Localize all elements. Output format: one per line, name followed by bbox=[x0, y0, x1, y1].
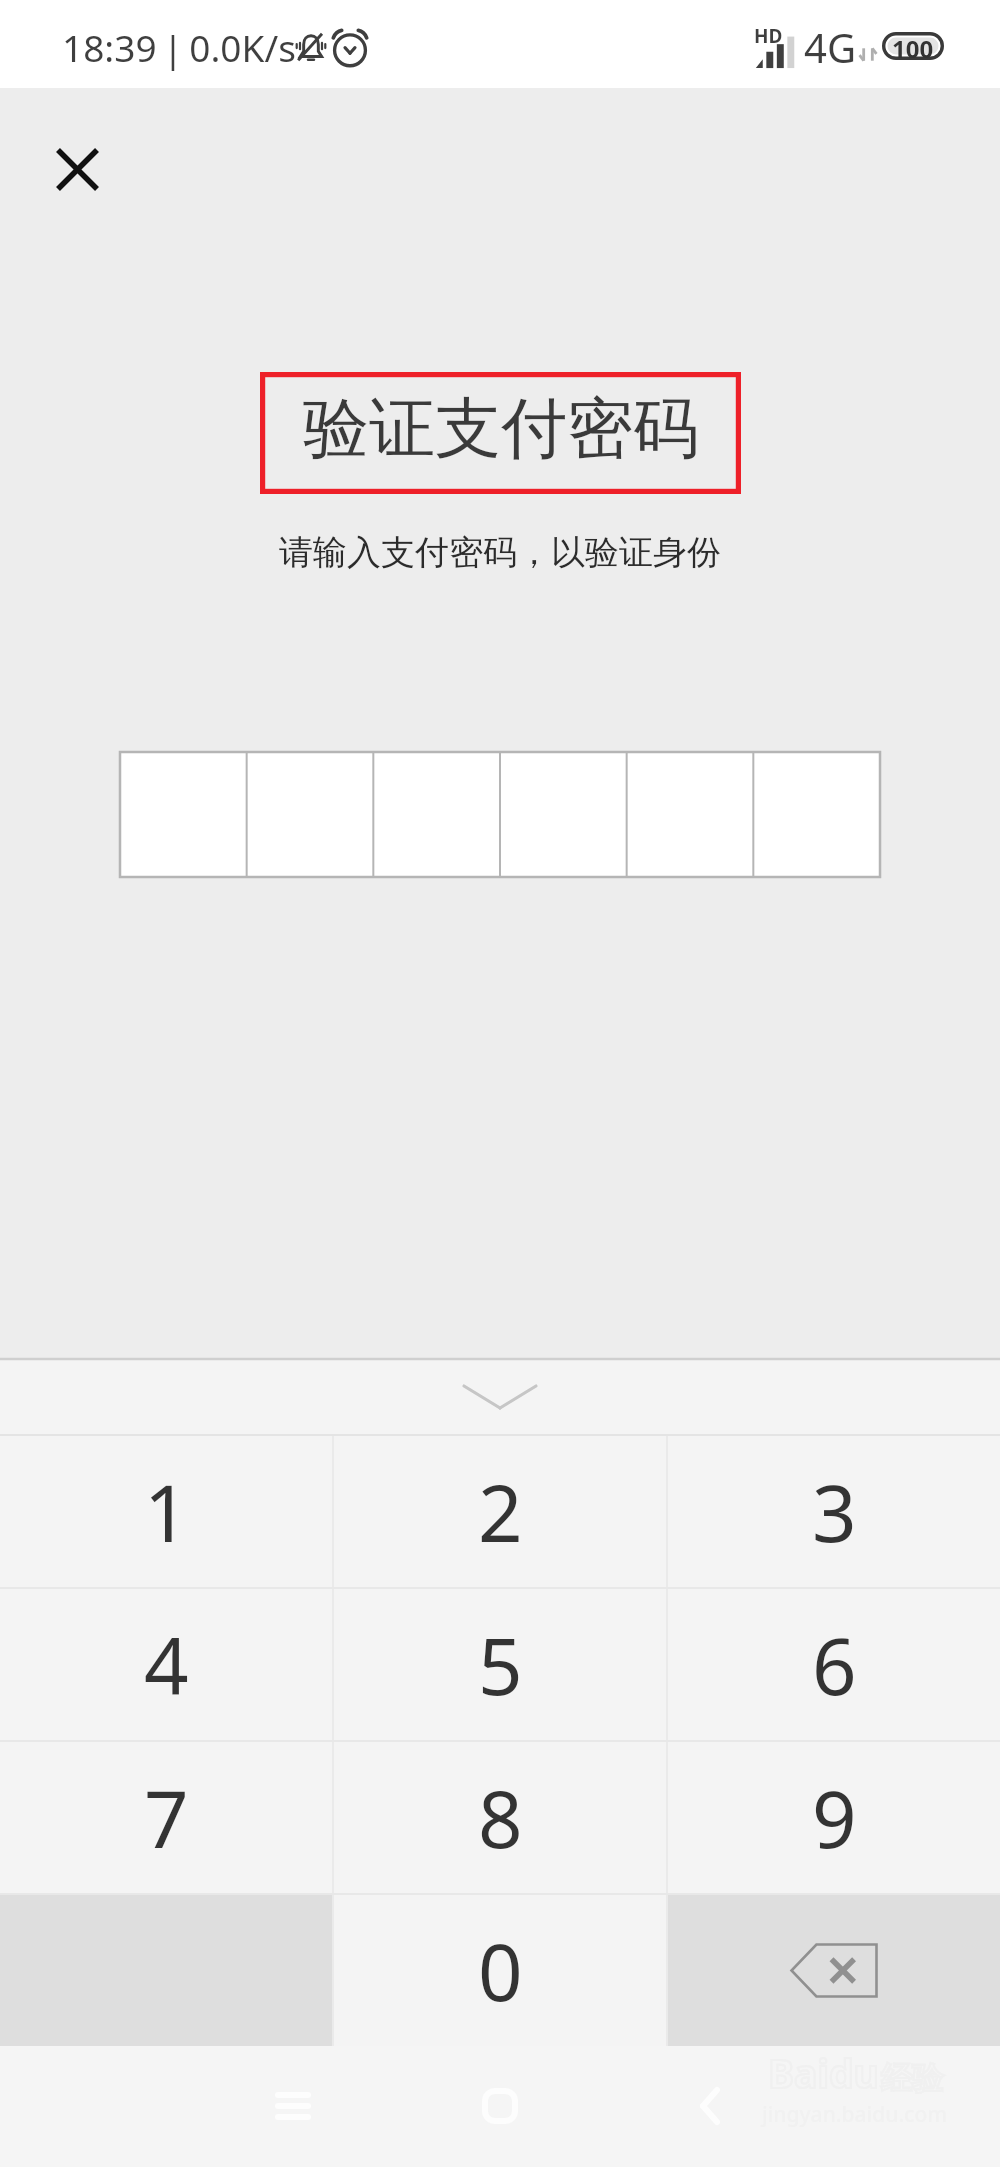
staticText: 9 bbox=[812, 1765, 857, 1871]
staticText: 6 bbox=[812, 1612, 857, 1718]
staticText: 2 bbox=[478, 1459, 523, 1565]
staticText: 100 bbox=[892, 32, 934, 60]
staticText: 0 bbox=[478, 1918, 523, 2024]
staticText: 1 bbox=[144, 1459, 189, 1565]
button[interactable]: 8 bbox=[334, 1742, 666, 1893]
staticText: HD bbox=[754, 23, 783, 49]
button[interactable]: Close bbox=[40, 132, 114, 206]
button[interactable]: 7 bbox=[0, 1742, 332, 1893]
button[interactable]: 4 bbox=[0, 1589, 332, 1740]
button[interactable]: 5 bbox=[334, 1589, 666, 1740]
button[interactable]: 0 bbox=[334, 1895, 666, 2046]
button[interactable]: 9 bbox=[668, 1742, 1000, 1893]
staticText: 5 bbox=[478, 1612, 523, 1718]
button[interactable]: 6 bbox=[668, 1589, 1000, 1740]
button[interactable]: Hide keyboard bbox=[0, 1358, 1000, 1436]
staticText: 4G bbox=[804, 20, 856, 74]
staticText: 4 bbox=[144, 1612, 189, 1718]
button[interactable]: 2 bbox=[334, 1436, 666, 1587]
button[interactable]: Delete bbox=[668, 1895, 1000, 2046]
button[interactable]: 3 bbox=[668, 1436, 1000, 1587]
staticText: 18:39 | 0.0K/s bbox=[62, 22, 296, 72]
staticText: 请输入支付密码，以验证身份 bbox=[279, 531, 721, 574]
staticText: 验证支付密码 bbox=[303, 387, 699, 470]
button[interactable]: 1 bbox=[0, 1436, 332, 1587]
staticText: 8 bbox=[478, 1765, 523, 1871]
staticText: 7 bbox=[144, 1765, 189, 1871]
button[interactable]: Password field bbox=[120, 752, 880, 877]
staticText: 3 bbox=[812, 1459, 857, 1565]
